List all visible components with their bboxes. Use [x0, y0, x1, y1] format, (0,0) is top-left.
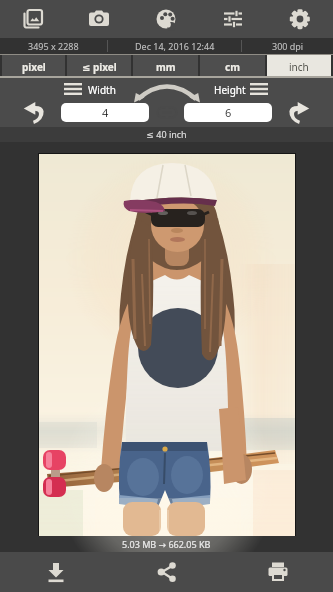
staticText: inch: [289, 60, 309, 74]
button[interactable]: [19, 99, 47, 127]
staticText: 3495 x 2288: [28, 40, 79, 52]
staticText: pixel: [22, 60, 46, 74]
button[interactable]: [111, 552, 222, 592]
staticText: ≤ 40 inch: [0, 128, 333, 140]
button[interactable]: [266, 0, 333, 38]
staticText: Height: [214, 83, 246, 97]
button[interactable]: [0, 0, 66, 38]
staticText: cm: [225, 60, 240, 74]
button[interactable]: 4: [61, 103, 149, 122]
staticText: 5.03 MB → 662.05 KB: [122, 538, 211, 550]
button[interactable]: [199, 0, 266, 38]
staticText: 6: [225, 105, 232, 120]
button[interactable]: pixel: [2, 55, 65, 78]
staticText: Dec 14, 2016 12:44: [135, 40, 215, 52]
button[interactable]: [62, 82, 84, 96]
button[interactable]: 6: [184, 103, 272, 122]
button[interactable]: [132, 0, 199, 38]
button[interactable]: [0, 552, 111, 592]
staticText: ≤ pixel: [82, 60, 117, 74]
button[interactable]: ≤ pixel: [67, 55, 131, 78]
button[interactable]: [248, 82, 270, 96]
staticText: 300 dpi: [272, 40, 304, 52]
button[interactable]: inch: [267, 55, 331, 78]
button[interactable]: [286, 99, 314, 127]
button[interactable]: cm: [200, 55, 265, 78]
staticText: Width: [88, 83, 116, 97]
staticText: mm: [156, 60, 176, 74]
button[interactable]: [66, 0, 132, 38]
button[interactable]: [222, 552, 333, 592]
button[interactable]: mm: [133, 55, 198, 78]
staticText: 4: [102, 105, 109, 120]
